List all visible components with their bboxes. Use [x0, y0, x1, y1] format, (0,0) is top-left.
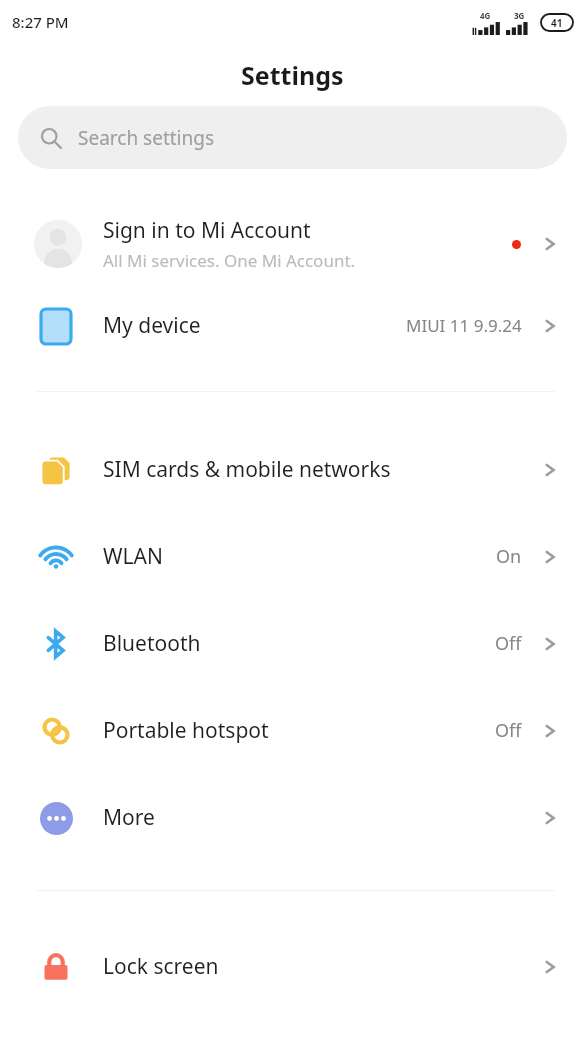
staticText: Portable hotspot — [103, 716, 495, 745]
staticText: More — [103, 803, 541, 832]
staticText: WLAN — [103, 542, 496, 571]
other: Open — [541, 958, 559, 976]
button[interactable]: Sign in to Mi Account — [0, 206, 585, 282]
other: Open — [541, 461, 559, 479]
button[interactable]: More — [0, 774, 585, 861]
button[interactable]: Bluetooth — [0, 600, 585, 687]
staticText: 8:27 PM — [12, 12, 69, 32]
staticText: My device — [103, 311, 406, 340]
other: Open — [541, 235, 559, 253]
staticText: Off — [495, 631, 522, 656]
staticText: Search settings — [78, 125, 215, 151]
button[interactable]: WLAN — [0, 513, 585, 600]
staticText: Bluetooth — [103, 629, 495, 658]
button[interactable]: My device — [0, 282, 585, 369]
staticText: Sign in to Mi Account — [103, 216, 311, 245]
button[interactable]: SIM cards & mobile networks — [0, 426, 585, 513]
other: Open — [541, 548, 559, 566]
staticText: Settings — [241, 58, 344, 92]
staticText: Off — [495, 718, 522, 743]
staticText: 4G — [480, 10, 491, 21]
other: Open — [541, 809, 559, 827]
staticText: SIM cards & mobile networks — [103, 455, 541, 484]
other: Open — [541, 317, 559, 335]
other: Open — [541, 722, 559, 740]
staticText: 41 — [551, 16, 563, 30]
staticText: MIUI 11 9.9.24 — [406, 314, 522, 337]
staticText: 3G — [514, 10, 525, 21]
staticText: On — [496, 544, 522, 569]
button[interactable]: Lock screen — [0, 923, 585, 1010]
staticText: All Mi services. One Mi Account. — [103, 249, 356, 272]
button[interactable]: Search settings — [18, 106, 567, 169]
staticText: Lock screen — [103, 952, 541, 981]
other: Open — [541, 635, 559, 653]
button[interactable]: Portable hotspot — [0, 687, 585, 774]
